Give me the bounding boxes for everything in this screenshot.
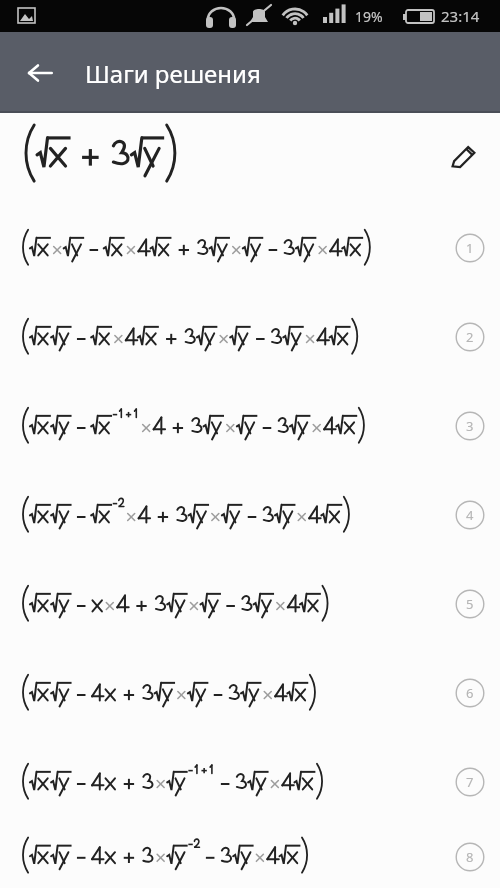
staticText: 23:14 [441, 6, 480, 26]
button[interactable]: Edit [443, 137, 485, 179]
staticText: 4 [466, 506, 474, 524]
staticText: 19% [355, 7, 383, 26]
staticText: 8 [466, 848, 474, 866]
button[interactable]: 8 [0, 826, 500, 888]
button[interactable]: Edit [0, 113, 500, 203]
button[interactable]: 3 [0, 381, 500, 470]
button[interactable]: Back [16, 49, 64, 97]
button[interactable]: 2 [0, 292, 500, 381]
staticText: Шаги решения [85, 57, 261, 90]
staticText: 6 [466, 684, 474, 702]
staticText: 5 [466, 595, 474, 613]
staticText: 2 [466, 328, 474, 346]
button[interactable]: 7 [0, 737, 500, 826]
button[interactable]: 4 [0, 470, 500, 559]
button[interactable]: 1 [0, 203, 500, 292]
button[interactable]: 6 [0, 648, 500, 737]
staticText: 1 [466, 239, 474, 257]
staticText: 3 [466, 417, 474, 435]
staticText: 7 [466, 773, 474, 791]
button[interactable]: 5 [0, 559, 500, 648]
